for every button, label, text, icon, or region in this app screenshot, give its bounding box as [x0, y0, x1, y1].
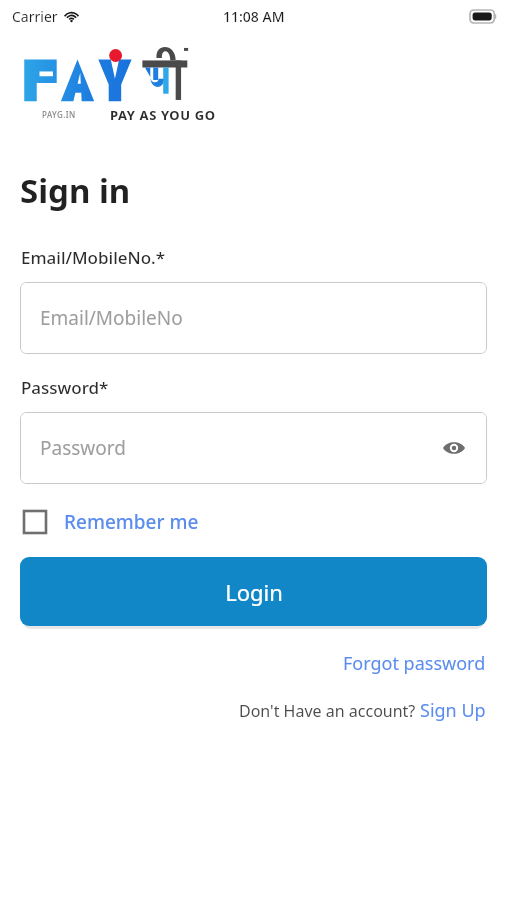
staticText: Password: [40, 435, 126, 461]
staticText: Don't Have an account?: [239, 700, 420, 722]
button[interactable]: Email/MobileNo: [20, 282, 487, 354]
staticText: Carrier: [12, 7, 58, 26]
button[interactable]: Password: [20, 412, 487, 484]
staticText: 11:08 AM: [223, 7, 285, 26]
staticText: PAYG.IN: [42, 109, 76, 120]
staticText: Password*: [21, 376, 109, 399]
staticText: Sign Up: [420, 698, 486, 723]
button[interactable]: Login: [20, 557, 487, 626]
staticText: Login: [225, 577, 283, 607]
staticText: Sign in: [20, 168, 131, 213]
button[interactable]: Remember me: [24, 509, 199, 535]
staticText: PAY AS YOU GO: [110, 106, 216, 124]
staticText: Forgot password: [343, 651, 486, 676]
staticText: Remember me: [64, 509, 199, 535]
button[interactable]: Show password: [439, 433, 469, 463]
staticText: Email/MobileNo: [40, 305, 183, 331]
staticText: Email/MobileNo.*: [21, 246, 166, 269]
button[interactable]: Forgot password: [343, 651, 486, 676]
button[interactable]: Sign Up: [420, 698, 486, 723]
